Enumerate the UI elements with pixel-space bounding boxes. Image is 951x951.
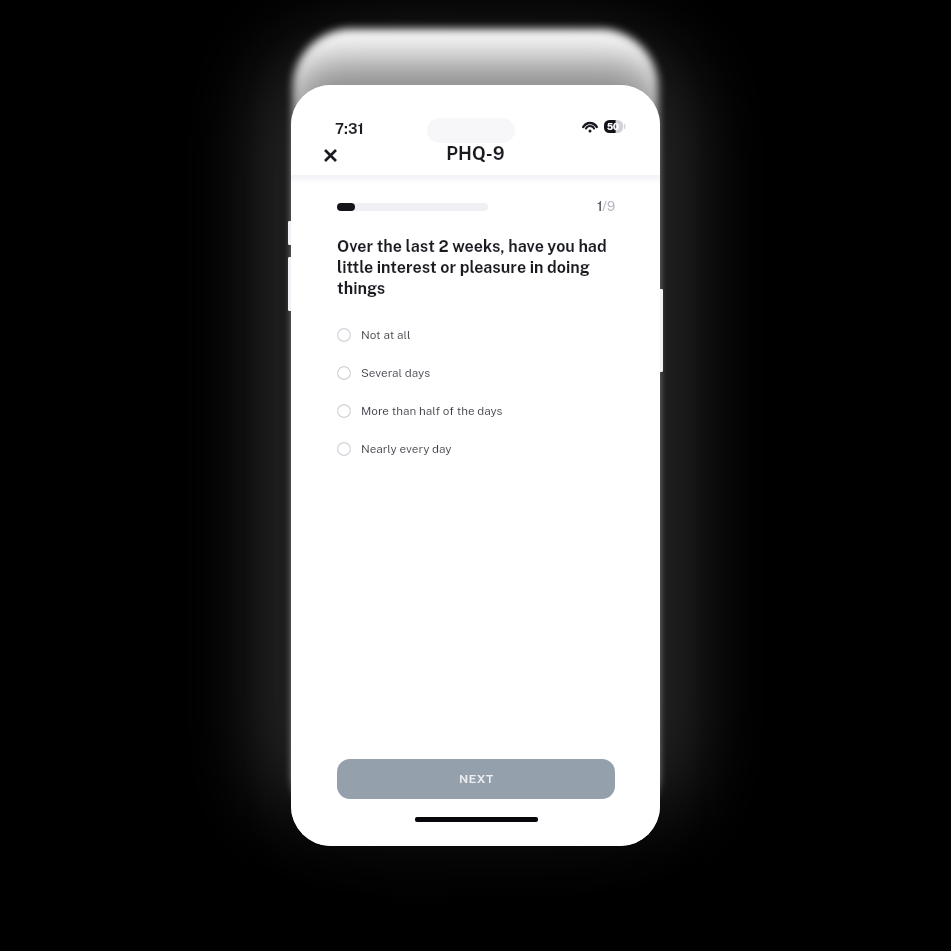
staticText: 50 [607, 121, 619, 132]
button[interactable]: Nearly every day [291, 430, 660, 468]
staticText: Not at all [361, 328, 411, 342]
button[interactable]: Several days [291, 354, 660, 392]
staticText: Nearly every day [361, 442, 452, 456]
button[interactable]: Not at all [291, 316, 660, 354]
staticText: PHQ-9 [291, 143, 660, 164]
staticText: NEXT [459, 772, 494, 786]
staticText: More than half of the days [361, 404, 503, 418]
staticText: Over the last 2 weeks, have you had litt… [337, 237, 615, 297]
staticText: Several days [361, 366, 431, 380]
staticText: 1/9 [337, 199, 615, 214]
button[interactable]: Close [315, 140, 346, 171]
button[interactable]: NEXT [337, 759, 615, 799]
button[interactable]: More than half of the days [291, 392, 660, 430]
staticText: 7:31 [335, 120, 364, 137]
